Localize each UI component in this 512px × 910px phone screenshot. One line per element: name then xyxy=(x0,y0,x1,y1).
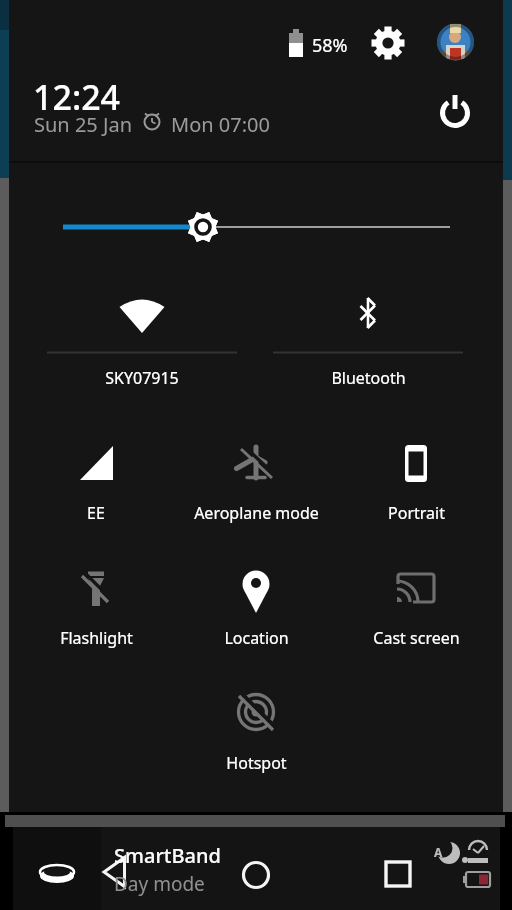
button[interactable] xyxy=(16,550,176,660)
button[interactable] xyxy=(176,550,336,660)
staticText: A xyxy=(434,844,443,860)
button[interactable] xyxy=(176,675,336,785)
staticText: Bluetooth xyxy=(331,367,406,389)
button[interactable] xyxy=(336,550,496,660)
staticText: Hotspot xyxy=(226,752,287,774)
button[interactable] xyxy=(370,25,408,63)
staticText: 58% xyxy=(312,33,348,58)
button[interactable] xyxy=(40,205,470,251)
button[interactable] xyxy=(30,280,255,400)
button[interactable] xyxy=(433,91,477,135)
staticText: Location xyxy=(224,627,289,649)
staticText: SmartBand xyxy=(114,842,221,869)
button[interactable] xyxy=(433,19,477,63)
staticText: Mon 07:00 xyxy=(171,111,270,138)
staticText: Portrait xyxy=(388,502,445,524)
button[interactable] xyxy=(13,827,500,910)
button[interactable] xyxy=(90,848,142,900)
button[interactable] xyxy=(176,425,336,535)
button[interactable] xyxy=(336,425,496,535)
button[interactable] xyxy=(255,280,480,400)
button[interactable] xyxy=(372,848,424,900)
staticText: Flashlight xyxy=(60,627,133,649)
staticText: EE xyxy=(87,502,105,524)
staticText: 12:24 xyxy=(33,74,121,120)
staticText: Day mode xyxy=(114,871,205,897)
staticText: Cast screen xyxy=(373,627,460,649)
staticText: Aeroplane mode xyxy=(194,502,319,524)
staticText: Sun 25 Jan xyxy=(34,111,133,138)
button[interactable] xyxy=(230,848,282,900)
button[interactable] xyxy=(16,425,176,535)
staticText: SKY07915 xyxy=(105,367,179,389)
